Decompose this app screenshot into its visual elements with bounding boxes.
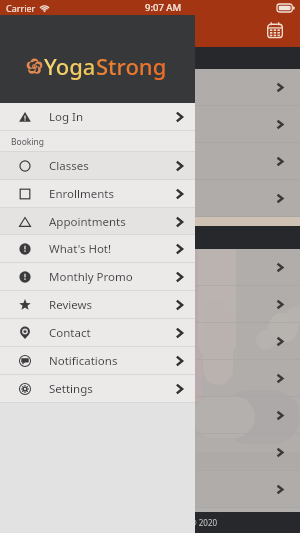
staticText: Yoga	[44, 51, 96, 81]
button[interactable]: Monthly Promo	[0, 263, 195, 291]
button[interactable]	[0, 471, 300, 508]
button[interactable]	[0, 249, 300, 286]
button[interactable]: Appointments	[0, 208, 195, 235]
staticText: Reviews	[49, 297, 93, 313]
staticText: Monthly Promo	[49, 269, 133, 285]
staticText: 9:07 AM	[145, 1, 182, 14]
button[interactable]	[0, 434, 300, 471]
button[interactable]	[0, 286, 300, 323]
button[interactable]: Log In	[0, 103, 195, 131]
staticText: Notifications	[49, 353, 118, 369]
button[interactable]	[0, 397, 300, 434]
button[interactable]: Enrollments	[0, 180, 195, 208]
staticText: Booking	[11, 136, 45, 148]
button[interactable]	[0, 323, 300, 360]
button[interactable]	[0, 106, 300, 143]
button[interactable]	[0, 180, 300, 217]
staticText: What's Hot!	[49, 241, 112, 257]
staticText: Strong	[96, 51, 167, 81]
button[interactable]: Classes	[0, 152, 195, 180]
button[interactable]: Calendar	[264, 19, 286, 41]
staticText: 9:07 AM	[145, 1, 182, 14]
button[interactable]: Settings	[0, 375, 195, 403]
button[interactable]: Notifications	[0, 347, 195, 375]
staticText: Classes	[49, 158, 89, 174]
staticText: Settings	[49, 381, 93, 397]
button[interactable]	[0, 360, 300, 397]
staticText: © 2020	[190, 517, 218, 528]
staticText: Log In	[49, 109, 84, 125]
staticText: Carrier	[6, 2, 36, 14]
staticText: Carrier	[6, 2, 36, 14]
button[interactable]	[0, 143, 300, 180]
button[interactable]: What's Hot!	[0, 235, 195, 263]
button[interactable]: Contact	[0, 319, 195, 347]
staticText: Appointments	[49, 214, 126, 230]
staticText: Contact	[49, 325, 91, 341]
button[interactable]: Reviews	[0, 291, 195, 319]
button[interactable]	[0, 69, 300, 106]
staticText: Enrollments	[49, 186, 114, 202]
